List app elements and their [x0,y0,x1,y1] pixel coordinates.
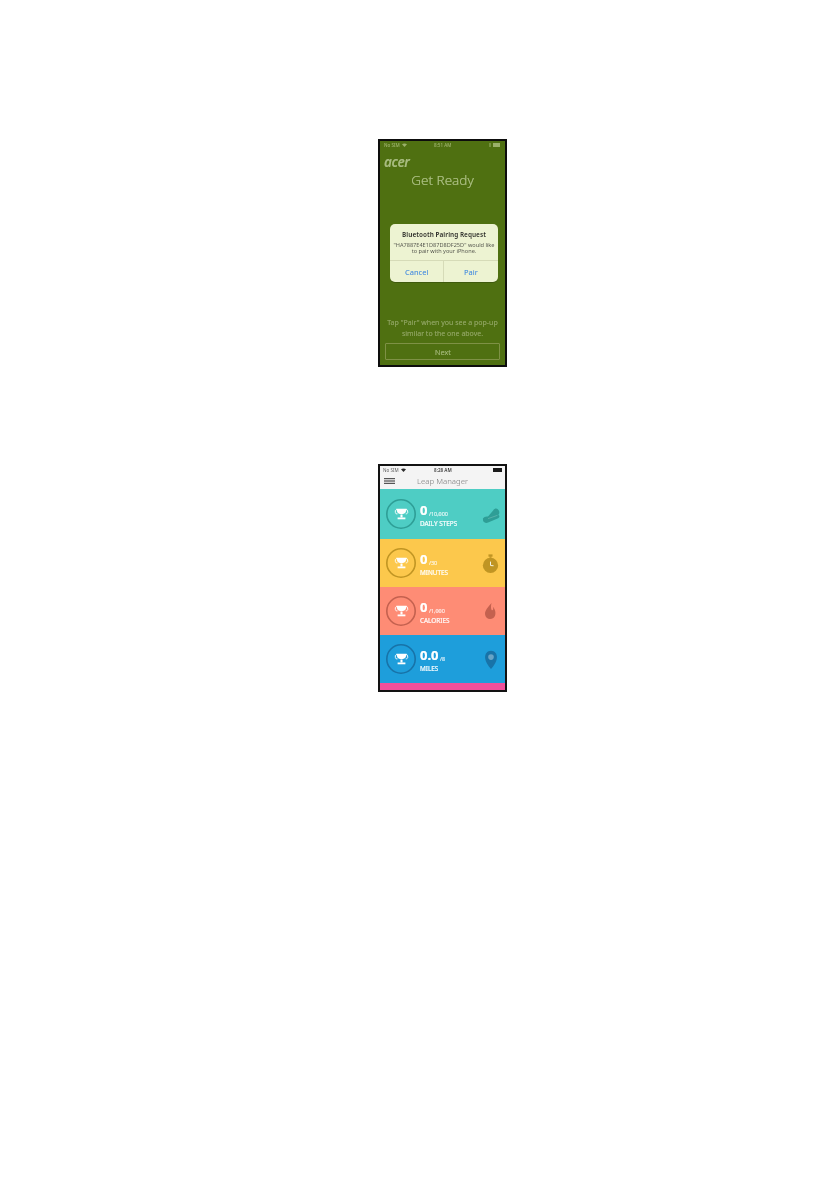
staticText: Tap "Pair" when you see a pop-up similar… [383,318,502,338]
button[interactable]: Open navigation menu [380,473,398,489]
staticText: No SIM [383,467,399,473]
staticText: "HA7887E4E1D87D8DF25D" would like to pai… [393,241,495,255]
staticText: Next [435,347,451,357]
staticText: 0 [420,598,428,616]
staticText: 8:51 AM [434,142,452,148]
staticText: No SIM [384,142,400,148]
staticText: MILES [420,664,439,673]
button[interactable]: Cancel [390,261,443,282]
button[interactable]: 0.0 [380,635,505,683]
staticText: Bluetooth Pairing Request [390,230,498,239]
staticText: Get Ready [380,171,505,189]
staticText: acer [384,153,410,171]
button[interactable]: 0 [380,539,505,587]
staticText: 0.0 [420,646,439,664]
staticText: /1,000 [429,607,445,614]
staticText: 0 [420,550,428,568]
staticText: CALORIES [420,616,450,625]
staticText: Leap Manager [417,476,469,487]
staticText: Cancel [405,267,429,277]
button[interactable]: Pair [444,261,498,282]
staticText: MINUTES [420,568,449,577]
button[interactable]: Next [385,343,500,360]
staticText: 0 [420,501,428,519]
staticText: /8 [440,655,446,662]
staticText: /10,000 [429,510,448,517]
button[interactable]: 0 [380,587,505,635]
button[interactable]: 0 [380,489,505,539]
staticText: DAILY STEPS [420,519,458,528]
staticText: Pair [464,267,478,277]
staticText: /30 [429,559,438,566]
staticText: 8:28 AM [434,467,452,473]
